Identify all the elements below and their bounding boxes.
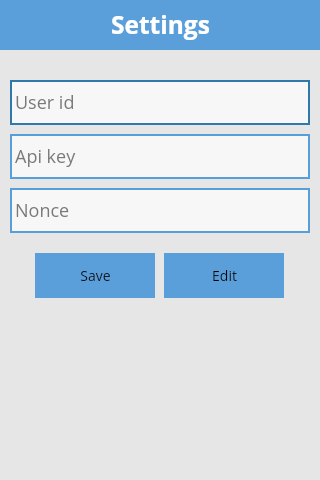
button[interactable]: Edit <box>164 253 284 298</box>
button[interactable]: Save <box>35 253 155 298</box>
button[interactable]: User id <box>10 80 310 125</box>
staticText: Edit <box>212 266 237 285</box>
staticText: Save <box>80 266 111 285</box>
button[interactable]: Api key <box>10 134 310 179</box>
staticText: Settings <box>111 8 210 41</box>
staticText: User id <box>15 90 75 115</box>
button[interactable]: Nonce <box>10 188 310 233</box>
staticText: Api key <box>15 144 76 169</box>
staticText: Nonce <box>15 198 70 223</box>
